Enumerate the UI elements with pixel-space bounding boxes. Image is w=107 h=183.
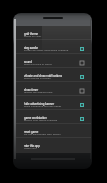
button[interactable]: reset game: [16, 124, 91, 137]
staticText: vibrate and show notifications: [24, 74, 62, 78]
staticText: when you click or select: [24, 62, 52, 65]
staticText: game workstation: [24, 116, 47, 120]
button[interactable]: vibrate and show notifications: [16, 68, 91, 81]
staticText: hide advertising banner: [24, 102, 55, 106]
staticText: sound: [24, 60, 32, 64]
button[interactable]: hide advertising banner: [16, 96, 91, 109]
button[interactable]: Toggle: [79, 46, 85, 52]
button[interactable]: grid theme: [16, 26, 91, 39]
button[interactable]: game workstation: [16, 110, 91, 123]
staticText: display the elapsed time: [24, 90, 53, 93]
staticText: stay awake: [24, 46, 38, 50]
staticText: what is your device software: [24, 118, 58, 121]
button[interactable]: sound: [16, 54, 91, 67]
staticText: show timer: [24, 88, 39, 92]
staticText: reset game: [24, 130, 39, 134]
staticText: based on color: [24, 34, 42, 37]
button[interactable]: rate this app: [16, 138, 91, 151]
staticText: screen will never sleep while charging: [24, 48, 69, 51]
button[interactable]: Toggle: [79, 116, 85, 122]
button[interactable]: Toggle: [79, 88, 85, 94]
button[interactable]: Toggle: [79, 102, 85, 108]
staticText: grid theme: [24, 32, 38, 36]
button[interactable]: Toggle: [79, 74, 85, 80]
staticText: when vibrate is broken: [24, 76, 51, 79]
button[interactable]: Toggle: [79, 60, 85, 66]
staticText: thank you!: [24, 146, 37, 149]
staticText: while navigating through pages: [24, 104, 62, 107]
button[interactable]: show timer: [16, 82, 91, 95]
staticText: set the parameters with factory: [24, 132, 61, 135]
button[interactable]: stay awake: [16, 40, 91, 53]
staticText: rate this app: [24, 144, 40, 148]
